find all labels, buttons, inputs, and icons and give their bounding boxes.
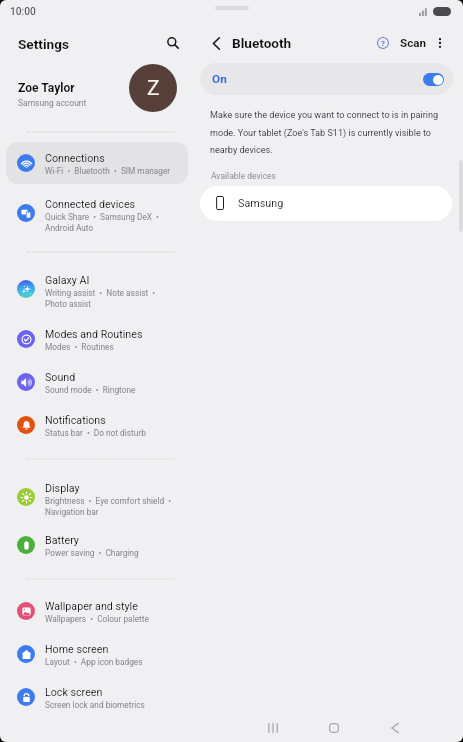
button[interactable]: Lock screen [6,676,188,718]
button[interactable]: Home [321,715,347,741]
staticText: Galaxy AI [45,274,90,287]
button[interactable]: Back [203,30,229,56]
staticText: Wi-Fi • Bluetooth • SIM manager [45,166,171,176]
staticText: Brightness • Eye comfort shield • Naviga… [45,496,176,517]
staticText: Power saving • Charging [45,548,139,558]
button[interactable]: Sound [6,361,188,403]
button[interactable]: Recents [260,715,286,741]
button[interactable]: Help [370,30,396,56]
button[interactable]: Galaxy AI [6,265,188,313]
staticText: Scan [400,36,427,50]
staticText: Screen lock and biometrics [45,700,145,710]
staticText: Available devices [211,171,277,181]
button[interactable]: Search [160,30,186,56]
staticText: Quick Share • Samsung DeX • Android Auto [45,212,176,233]
staticText: Bluetooth [232,35,292,51]
staticText: Home screen [45,643,109,656]
button[interactable]: Zoe Taylor [0,64,193,112]
staticText: Connections [45,152,105,165]
staticText: Make sure the device you want to connect… [210,110,449,155]
staticText: On [212,72,227,86]
staticText: Battery [45,534,79,547]
staticText: Notifications [45,414,106,427]
staticText: Zoe Taylor [18,81,75,95]
button[interactable]: Back [382,715,408,741]
staticText: Lock screen [45,686,103,699]
staticText: Modes • Routines [45,342,114,352]
button[interactable]: Notifications [6,404,188,446]
button[interactable]: Samsung [200,186,452,221]
staticText: Modes and Routines [45,328,143,341]
button[interactable]: Modes and Routines [6,318,188,360]
button[interactable]: Scan [396,33,431,53]
button[interactable]: Home screen [6,633,188,675]
staticText: ? [381,39,385,48]
staticText: Samsung account [18,98,87,108]
staticText: Wallpapers • Colour palette [45,614,149,624]
staticText: Status bar • Do not disturb [45,428,146,438]
button[interactable]: Connections [6,142,188,184]
button[interactable]: More options [427,30,453,56]
staticText: Z [147,76,160,101]
button[interactable]: Battery [6,524,188,566]
button[interactable]: Connected devices [6,189,188,237]
staticText: Display [45,482,80,495]
button[interactable]: On [200,63,453,95]
button[interactable]: Display [6,473,188,521]
staticText: Sound mode • Ringtone [45,385,136,395]
staticText: Layout • App icon badges [45,657,143,667]
staticText: Samsung [238,197,284,210]
staticText: Writing assist • Note assist • Photo ass… [45,288,176,309]
staticText: Connected devices [45,198,136,211]
button[interactable]: Wallpaper and style [6,590,188,632]
staticText: Wallpaper and style [45,600,138,613]
staticText: Settings [18,36,69,52]
staticText: 10:00 [10,6,36,18]
staticText: Sound [45,371,76,384]
